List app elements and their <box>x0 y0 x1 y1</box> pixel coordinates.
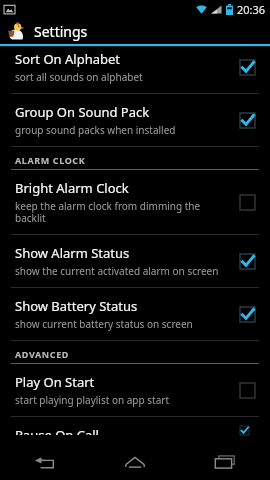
button[interactable]: Checked <box>236 303 258 325</box>
staticText: start playing playlist on app start <box>15 393 169 407</box>
staticText: group sound packs when installed <box>15 123 176 137</box>
button[interactable]: Checked <box>236 109 258 131</box>
button[interactable]: Recent apps <box>180 444 270 480</box>
button[interactable]: Group On Sound Pack <box>0 94 270 146</box>
button[interactable]: Checked <box>236 426 258 435</box>
button[interactable]: Unchecked <box>236 191 258 213</box>
staticText: show current battery status on screen <box>15 317 193 331</box>
staticText: Play On Start <box>15 373 95 391</box>
button[interactable]: Back <box>0 444 90 480</box>
staticText: Settings <box>34 22 88 41</box>
staticText: show the current activated alarm on scre… <box>15 264 219 278</box>
button[interactable]: Bright Alarm Clock <box>0 170 270 234</box>
staticText: ADVANCED <box>15 348 69 360</box>
button[interactable]: Show Alarm Status <box>0 235 270 287</box>
button[interactable]: Checked <box>236 56 258 78</box>
staticText: Bright Alarm Clock <box>15 179 129 197</box>
button[interactable]: Sort On Alphabet <box>0 47 270 93</box>
staticText: Show Alarm Status <box>15 244 130 262</box>
button[interactable]: Checked <box>236 250 258 272</box>
staticText: Group On Sound Pack <box>15 103 150 121</box>
button[interactable]: Pause On Call <box>0 417 270 444</box>
button[interactable]: Play On Start <box>0 364 270 416</box>
button[interactable]: Show Battery Status <box>0 288 270 340</box>
button[interactable]: Home <box>90 444 180 480</box>
staticText: ALARM CLOCK <box>15 154 86 166</box>
button[interactable]: Unchecked <box>236 379 258 401</box>
staticText: Sort On Alphabet <box>15 50 121 68</box>
staticText: Pause On Call <box>15 426 99 435</box>
staticText: 20:36 <box>237 2 266 17</box>
staticText: sort all sounds on alphabet <box>15 70 143 84</box>
staticText: keep the alarm clock from dimming the ba… <box>15 199 228 225</box>
staticText: Show Battery Status <box>15 297 138 315</box>
